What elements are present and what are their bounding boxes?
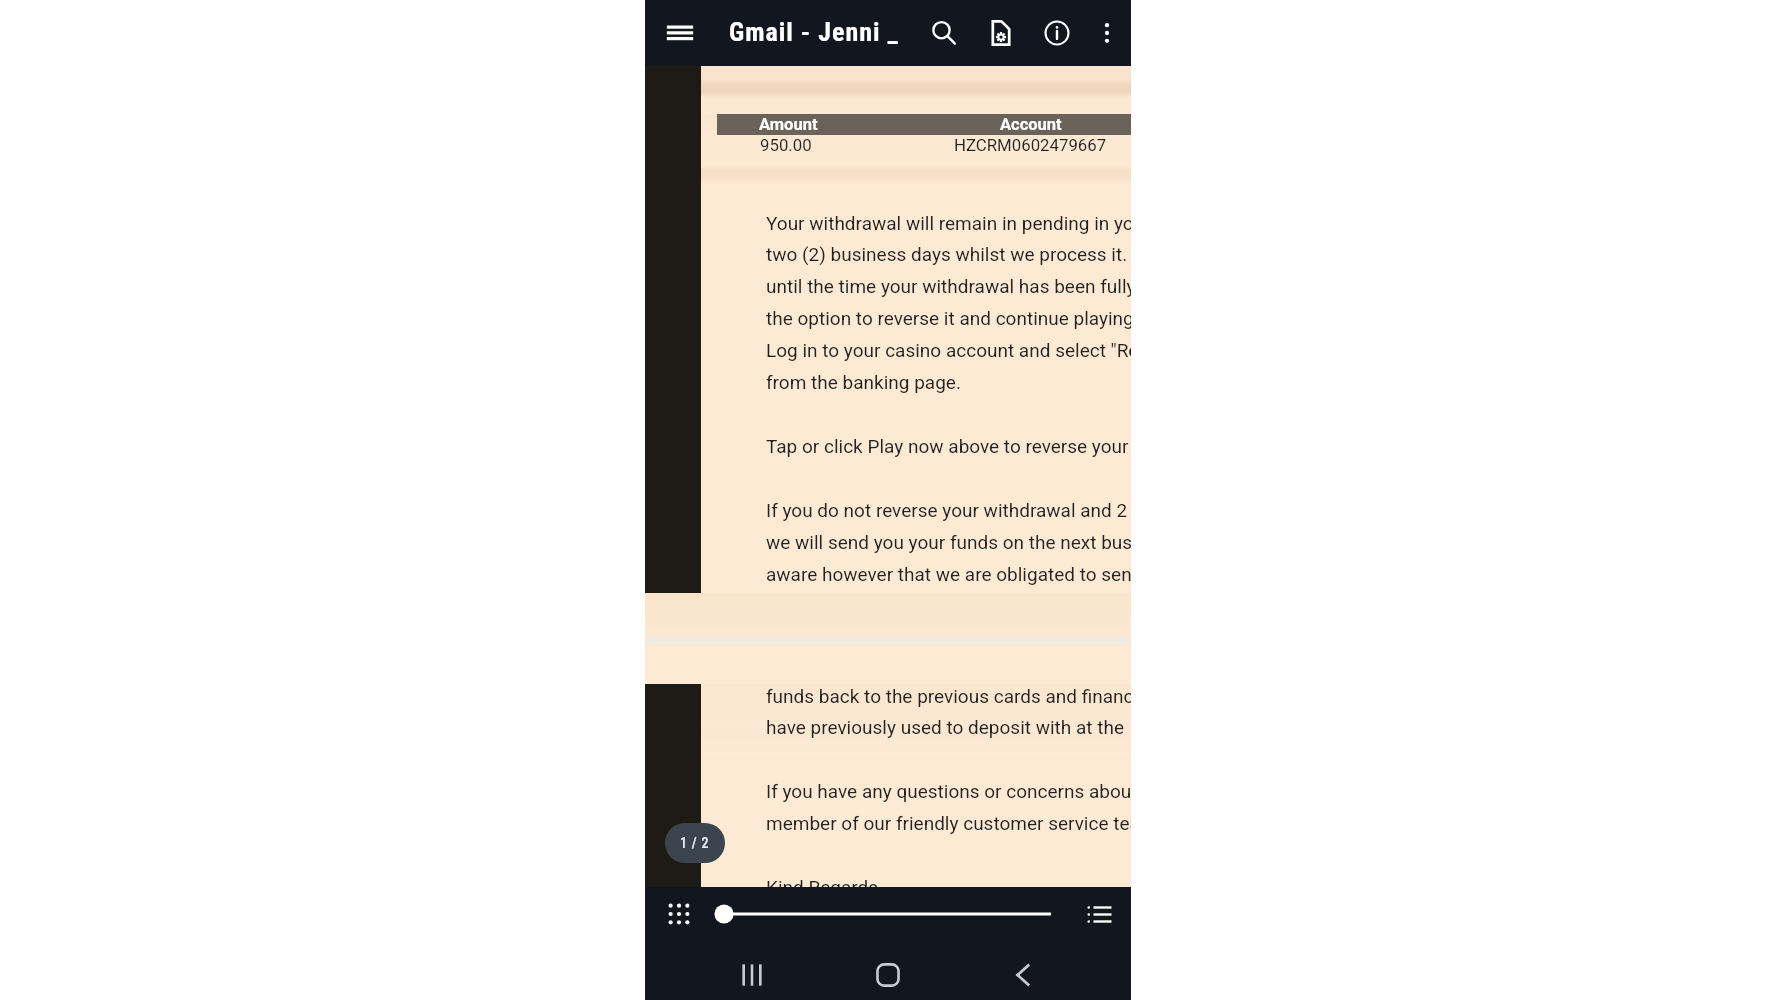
staticText: 1 / 2 (680, 835, 710, 851)
button[interactable]: Home (863, 950, 913, 1000)
staticText: HZCRM0602479667 (954, 135, 1107, 155)
button[interactable]: Thumbnails (657, 892, 701, 936)
staticText: Gmail - Jenni _ (729, 17, 899, 47)
staticText: Your withdrawal will remain in pending i… (766, 212, 1131, 586)
staticText: Amount (759, 115, 818, 134)
button[interactable]: Back (998, 950, 1048, 1000)
staticText: Account (1000, 115, 1062, 134)
button[interactable]: Page 1 of 2 (665, 823, 725, 863)
button[interactable]: More options (1084, 10, 1130, 56)
button[interactable]: Recent apps (727, 950, 777, 1000)
button[interactable]: Navigation menu (657, 10, 703, 56)
staticText: funds back to the previous cards and fin… (766, 685, 1131, 887)
button[interactable]: Search (921, 10, 967, 56)
button[interactable]: Document settings (978, 10, 1024, 56)
button[interactable]: Page slider (707, 896, 1067, 932)
button[interactable]: Outline (1077, 892, 1121, 936)
staticText: 950.00 (760, 135, 812, 155)
button[interactable]: Info (1034, 10, 1080, 56)
